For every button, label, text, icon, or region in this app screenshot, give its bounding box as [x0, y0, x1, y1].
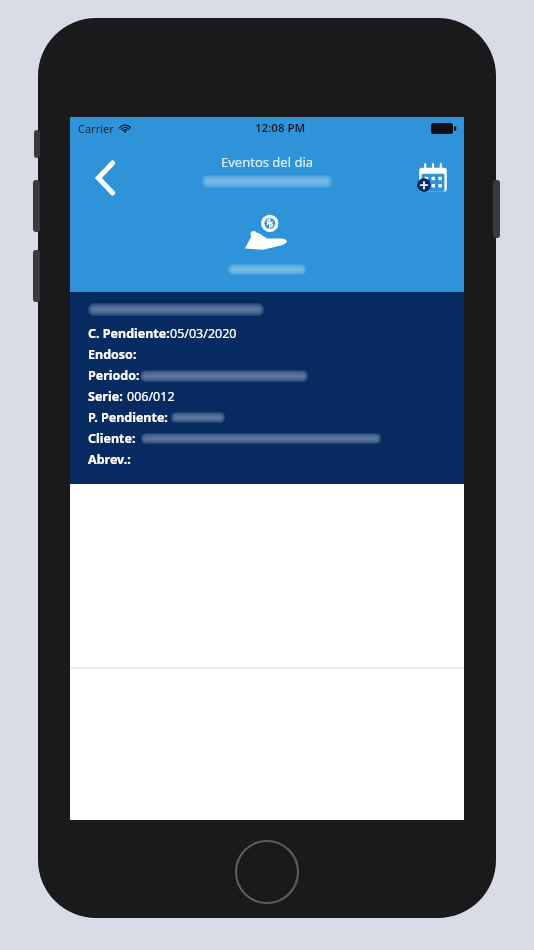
staticText: Carrier — [78, 121, 114, 136]
staticText: 12:08 PM — [255, 120, 306, 136]
staticText: Periodo: — [88, 367, 140, 384]
staticText: 006/012 — [127, 388, 175, 405]
staticText: C. Pendiente: — [88, 325, 170, 342]
staticText: Cliente: — [88, 430, 136, 447]
staticText: Abrev.: — [88, 451, 131, 468]
staticText: P. Pendiente: — [88, 409, 168, 426]
staticText: Serie: — [88, 388, 123, 405]
staticText: Eventos del dia — [221, 153, 314, 171]
staticText: Endoso: — [88, 346, 137, 363]
button[interactable]: Back — [80, 153, 130, 203]
staticText: 05/03/2020 — [170, 325, 237, 342]
button[interactable]: Add event — [410, 155, 456, 201]
